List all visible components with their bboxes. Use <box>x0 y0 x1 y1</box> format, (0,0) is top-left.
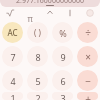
button[interactable]: 6 <box>52 70 73 91</box>
button[interactable]: Square root <box>0 7 20 19</box>
button[interactable]: × <box>77 46 98 67</box>
button[interactable]: ( ) <box>27 22 48 43</box>
staticText: π <box>26 13 34 24</box>
staticText: − <box>85 74 91 88</box>
button[interactable]: 3 <box>52 92 73 100</box>
button[interactable]: ÷ <box>77 22 98 43</box>
staticText: 5 <box>35 75 41 87</box>
button[interactable]: Pi <box>20 7 40 19</box>
staticText: ( ) <box>34 27 41 38</box>
staticText: × <box>85 50 91 64</box>
staticText: % <box>59 27 67 39</box>
button[interactable]: 9 <box>52 46 73 67</box>
button[interactable]: 7 <box>2 46 23 67</box>
button[interactable]: 8 <box>27 46 48 67</box>
staticText: 2,977,160000000000 <box>0 0 100 3</box>
staticText: 3 <box>60 92 66 100</box>
button[interactable]: 5 <box>27 70 48 91</box>
button[interactable]: Absolute value <box>60 7 80 19</box>
staticText: 9 <box>60 51 66 63</box>
button[interactable]: + <box>77 92 98 100</box>
button[interactable]: 4 <box>2 70 23 91</box>
staticText: AC <box>7 27 18 38</box>
button[interactable]: − <box>77 70 98 91</box>
staticText: 1 <box>10 92 16 100</box>
staticText: 2 <box>35 92 41 100</box>
button[interactable]: AC <box>2 22 23 43</box>
button[interactable]: % <box>52 22 73 43</box>
staticText: 6 <box>60 75 66 87</box>
staticText: 4 <box>10 75 16 87</box>
staticText: ÷ <box>85 26 91 40</box>
button[interactable]: 1 <box>2 92 23 100</box>
button[interactable]: Power <box>40 7 60 19</box>
button[interactable]: More <box>80 7 100 19</box>
button[interactable]: 2 <box>27 92 48 100</box>
staticText: + <box>85 92 91 100</box>
staticText: 7 <box>10 51 16 63</box>
staticText: 8 <box>35 51 41 63</box>
